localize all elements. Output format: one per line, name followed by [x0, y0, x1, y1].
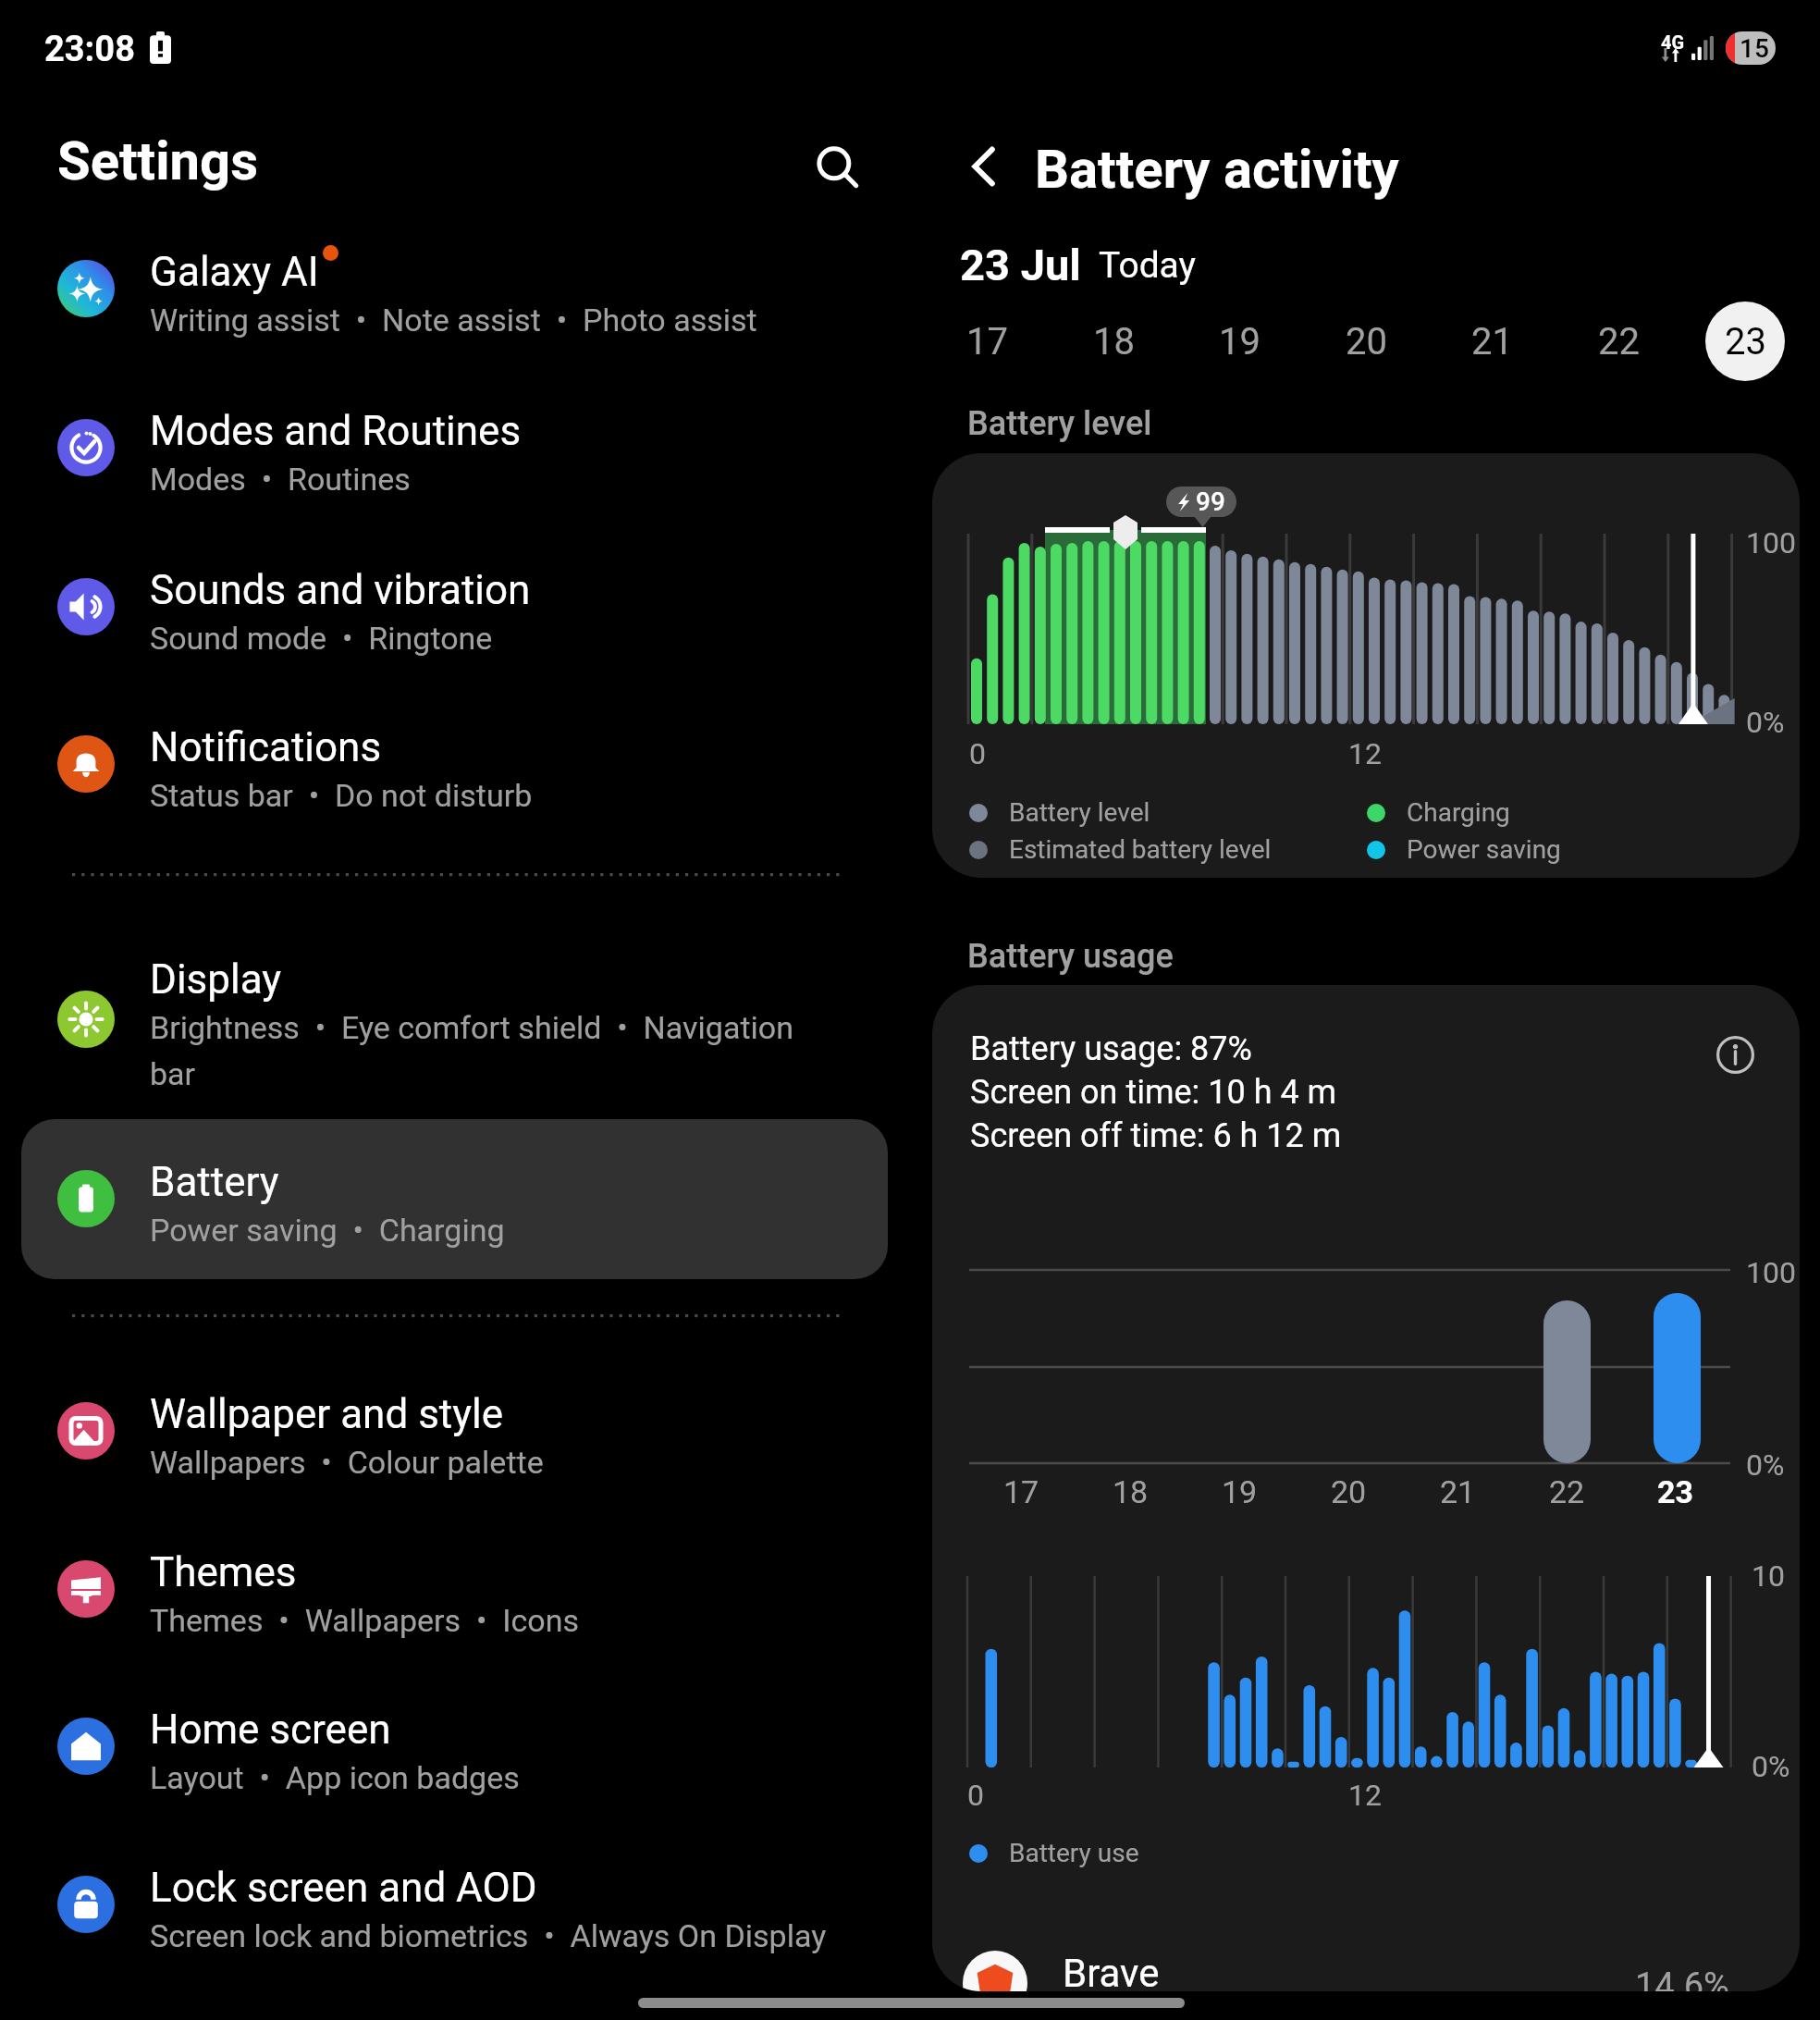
staticText: Home screen [150, 1706, 391, 1754]
button[interactable]: 19 [1199, 302, 1279, 381]
staticText: 12 [1348, 736, 1382, 771]
button[interactable]: Info [1707, 1027, 1763, 1082]
button[interactable] [21, 1119, 888, 1279]
staticText: Sounds and vibration [150, 566, 531, 614]
staticText: Screen on time: 10 h 4 m [970, 1073, 1337, 1112]
staticText: Battery level [967, 404, 1152, 443]
button[interactable] [0, 1357, 890, 1505]
staticText: 22 [1549, 1473, 1585, 1510]
button[interactable] [0, 533, 890, 681]
button[interactable] [0, 690, 890, 838]
staticText: 20 [1346, 320, 1387, 363]
staticText: 14.6% [1635, 1965, 1729, 1991]
staticText: 100 [1746, 1255, 1796, 1290]
staticText: 0 [969, 736, 986, 771]
staticText: 22 [1598, 320, 1640, 363]
staticText: 21 [1440, 1473, 1476, 1510]
staticText: 17 [1003, 1473, 1039, 1510]
staticText: Notifications [150, 723, 382, 771]
staticText: 99 [1196, 487, 1225, 517]
staticText: Charging [1407, 797, 1510, 828]
staticText: 19 [1222, 1473, 1258, 1510]
staticText: 0% [1746, 705, 1785, 740]
button[interactable]: 17 [947, 302, 1027, 381]
staticText: Battery activity [1035, 138, 1399, 201]
button[interactable]: 18 [1074, 302, 1153, 381]
staticText: Brightness • Eye comfort shield • Naviga… [150, 1009, 793, 1046]
staticText: Themes • Wallpapers • Icons [150, 1602, 580, 1639]
button[interactable] [932, 1919, 1800, 1991]
staticText: 15 [1740, 33, 1769, 64]
staticText: 10 [1752, 1558, 1785, 1594]
staticText: 23 [1657, 1473, 1694, 1510]
staticText: 0% [1752, 1749, 1790, 1784]
staticText: Estimated battery level [1009, 834, 1272, 865]
staticText: Modes and Routines [150, 407, 522, 455]
staticText: 23 Jul [960, 240, 1081, 290]
staticText: 17 [966, 320, 1008, 363]
staticText: Screen lock and biometrics • Always On D… [150, 1917, 827, 1954]
staticText: Wallpapers • Colour palette [150, 1444, 544, 1481]
staticText: Battery level [1009, 797, 1150, 828]
button[interactable] [0, 374, 890, 522]
staticText: 4G [1661, 31, 1685, 53]
staticText: Battery usage: 87% [970, 1029, 1252, 1068]
staticText: 21 [1471, 320, 1513, 363]
staticText: Sound mode • Ringtone [150, 620, 493, 657]
staticText: Power saving [1407, 834, 1561, 865]
staticText: Battery use [1009, 1838, 1139, 1868]
staticText: 100 [1746, 525, 1796, 560]
button[interactable]: 21 [1452, 302, 1531, 381]
staticText: Battery [150, 1158, 279, 1206]
staticText: 23:08 [44, 29, 135, 70]
staticText: Display [150, 955, 282, 1004]
staticText: 0 [967, 1778, 984, 1813]
staticText: Themes [150, 1548, 297, 1596]
staticText: Screen off time: 6 h 12 m [970, 1116, 1342, 1155]
staticText: Lock screen and AOD [150, 1864, 537, 1912]
staticText: 19 [1219, 320, 1260, 363]
staticText: Power saving • Charging [150, 1212, 505, 1249]
staticText: Layout • App icon badges [150, 1759, 520, 1796]
staticText: Settings [57, 129, 259, 192]
button[interactable] [0, 1830, 890, 1978]
staticText: Modes • Routines [150, 461, 411, 498]
button[interactable] [0, 1125, 890, 1273]
staticText: 18 [1113, 1473, 1149, 1510]
staticText: Brave [1063, 1951, 1160, 1991]
staticText: Today [1099, 244, 1197, 287]
staticText: Status bar • Do not disturb [150, 777, 533, 814]
staticText: Galaxy AI [150, 248, 319, 296]
staticText: Battery usage [967, 937, 1174, 976]
button[interactable]: Search [803, 133, 873, 203]
staticText: Writing assist • Note assist • Photo ass… [150, 302, 757, 339]
staticText: bar [150, 1055, 196, 1092]
button[interactable] [0, 1515, 890, 1663]
staticText: 20 [1331, 1473, 1367, 1510]
staticText: Wallpaper and style [150, 1390, 504, 1438]
staticText: 0% [1746, 1447, 1785, 1483]
button[interactable] [0, 945, 890, 1093]
button[interactable]: 22 [1579, 302, 1658, 381]
staticText: 18 [1093, 320, 1135, 363]
button[interactable]: 20 [1326, 302, 1406, 381]
staticText: 23 [1725, 320, 1766, 363]
button[interactable]: Back [951, 133, 1017, 200]
button[interactable]: 23 [1705, 302, 1785, 381]
staticText: 12 [1348, 1778, 1382, 1813]
button[interactable] [0, 1672, 890, 1820]
button[interactable] [0, 215, 890, 363]
